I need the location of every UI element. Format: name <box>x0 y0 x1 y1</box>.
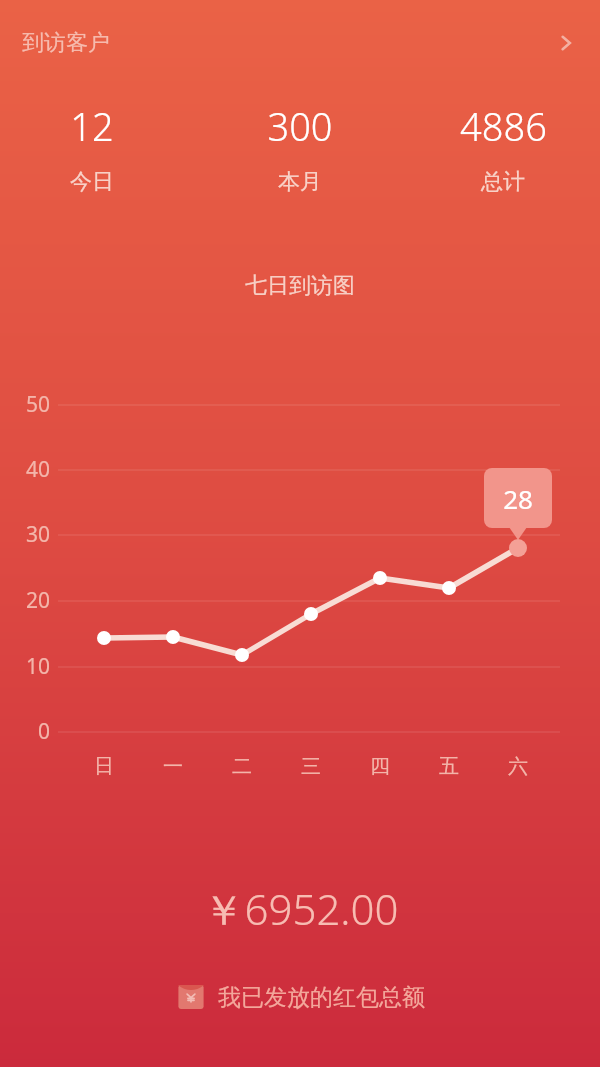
staticText: 50 <box>25 390 50 419</box>
staticText: 到访客户 <box>22 29 110 57</box>
other: Red packet <box>176 982 206 1012</box>
staticText: 六 <box>508 754 528 779</box>
button[interactable]: 4886 <box>403 100 600 196</box>
button[interactable]: 12 <box>0 100 192 196</box>
staticText: 今日 <box>70 168 114 196</box>
staticText: 300 <box>267 100 333 152</box>
button[interactable]: 到访客户 <box>0 0 600 86</box>
staticText: 40 <box>25 455 50 484</box>
staticText: 七日到访图 <box>245 272 355 300</box>
staticText: 一 <box>163 754 183 779</box>
staticText: 四 <box>370 754 390 779</box>
staticText: 我已发放的红包总额 <box>218 983 425 1012</box>
button[interactable]: Red packet <box>176 982 425 1012</box>
staticText: 30 <box>25 520 50 549</box>
staticText: 本月 <box>278 168 322 196</box>
staticText: 二 <box>232 754 252 779</box>
staticText: 10 <box>25 652 50 681</box>
staticText: ￥6952.00 <box>202 880 399 937</box>
staticText: 4886 <box>460 100 547 152</box>
staticText: 0 <box>37 717 50 746</box>
staticText: 12 <box>70 100 114 152</box>
staticText: 28 <box>503 481 533 516</box>
staticText: 总计 <box>481 168 525 196</box>
button[interactable]: 300 <box>200 100 400 196</box>
staticText: 五 <box>439 754 459 779</box>
staticText: 20 <box>25 586 50 615</box>
staticText: 三 <box>301 754 321 779</box>
other: More <box>554 31 578 55</box>
staticText: 日 <box>94 754 114 779</box>
